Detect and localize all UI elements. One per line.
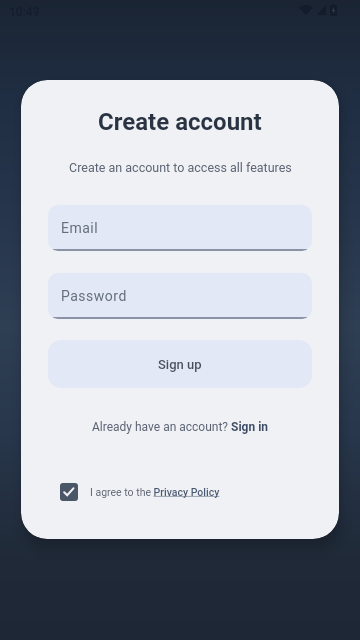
staticText: Create account (98, 108, 262, 136)
button[interactable]: Email (48, 205, 312, 251)
staticText: Password (61, 288, 127, 304)
button[interactable]: Already have an account? Sign in (21, 417, 339, 437)
staticText: 10:49 (9, 5, 40, 19)
staticText: I agree to the Privacy Policy (90, 486, 220, 498)
staticText: Create an account to access all features (69, 160, 292, 175)
button[interactable]: Password (48, 273, 312, 319)
button[interactable]: I agree to the Privacy Policy (60, 483, 220, 501)
staticText: Already have an account? Sign in (92, 420, 269, 434)
button[interactable]: Sign up (48, 340, 312, 388)
staticText: Email (61, 220, 99, 236)
staticText: Sign up (158, 357, 202, 372)
